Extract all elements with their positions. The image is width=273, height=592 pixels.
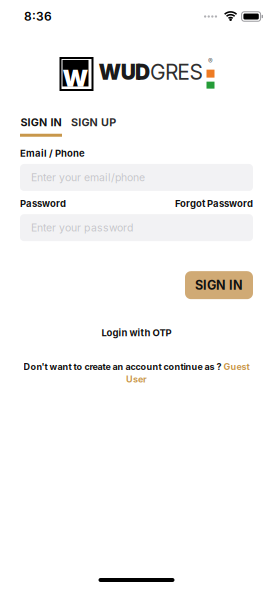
staticText: ® bbox=[208, 57, 213, 66]
staticText: Don't want to create an account continue… bbox=[23, 361, 223, 372]
staticText: Guest bbox=[223, 361, 249, 372]
staticText: Login with OTP bbox=[101, 327, 171, 338]
button[interactable]: SIGN IN bbox=[185, 271, 253, 299]
button[interactable]: Enter your password bbox=[20, 214, 253, 241]
staticText: SIGN UP bbox=[71, 116, 116, 129]
button[interactable]: Don't want to create an account continue… bbox=[23, 361, 249, 385]
staticText: SIGN IN bbox=[195, 278, 243, 292]
staticText: GRES bbox=[150, 60, 202, 84]
button[interactable]: Forgot Password bbox=[175, 198, 253, 209]
staticText: WUD bbox=[98, 60, 150, 84]
button[interactable]: SIGN UP bbox=[71, 116, 116, 137]
staticText: Forgot Password bbox=[175, 198, 253, 209]
staticText: SIGN IN bbox=[20, 116, 62, 129]
staticText: Email / Phone bbox=[20, 148, 85, 159]
button[interactable]: Login with OTP bbox=[101, 327, 171, 338]
staticText: W bbox=[62, 64, 88, 92]
staticText: Enter your email/phone bbox=[31, 171, 145, 184]
staticText: Password bbox=[20, 198, 66, 209]
button[interactable]: SIGN IN bbox=[20, 116, 62, 137]
staticText: User bbox=[126, 374, 147, 385]
staticText: 8:36 bbox=[24, 9, 52, 24]
staticText: Enter your password bbox=[31, 221, 133, 234]
button[interactable]: Enter your email/phone bbox=[20, 164, 253, 191]
